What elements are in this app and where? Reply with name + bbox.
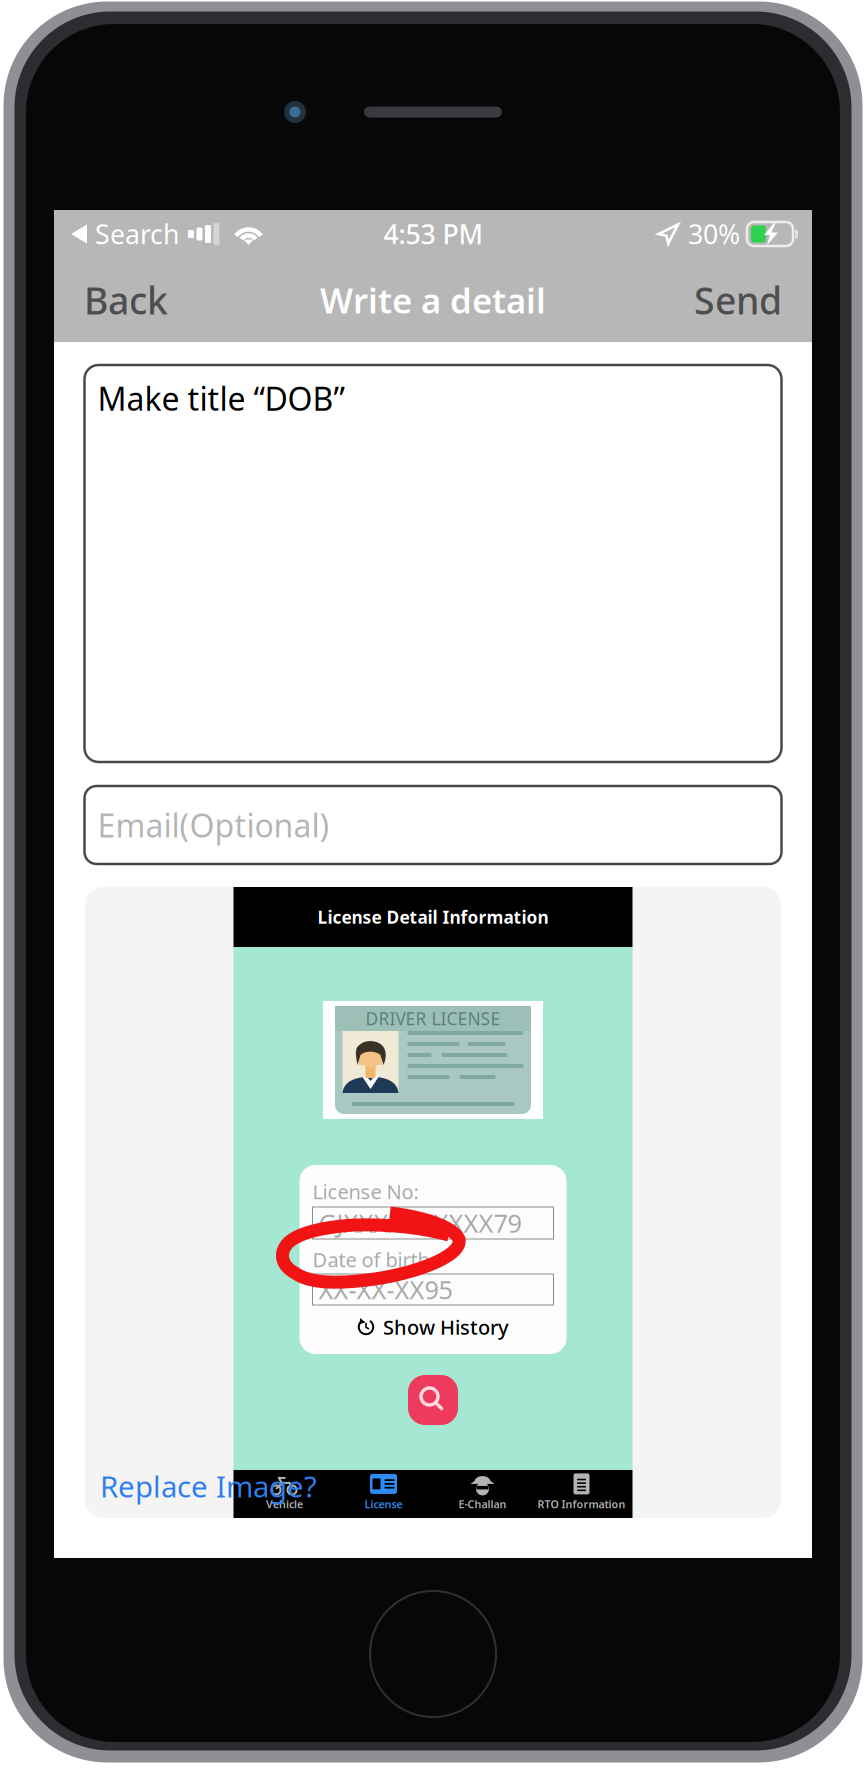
- staticText: Replace Image?: [100, 1466, 317, 1505]
- staticText: Search: [95, 216, 179, 252]
- staticText: 30%: [688, 216, 740, 252]
- button[interactable]: Show History: [357, 1317, 509, 1337]
- button[interactable]: Vehicle: [235, 1470, 334, 1518]
- button[interactable]: RTO Information: [532, 1470, 631, 1518]
- staticText: Write a detail: [320, 277, 546, 323]
- button[interactable]: Send: [680, 258, 796, 342]
- staticText: DRIVER LICENSE: [365, 1007, 500, 1030]
- staticText: License No:: [312, 1178, 418, 1205]
- staticText: Vehicle: [266, 1497, 303, 1511]
- staticText: E-Challan: [458, 1497, 506, 1511]
- staticText: GJXXXXXXXXXX79: [318, 1206, 521, 1240]
- button[interactable]: Search: [408, 1375, 458, 1425]
- staticText: License Detail Information: [317, 905, 548, 928]
- staticText: Email(Optional): [97, 804, 329, 846]
- staticText: Date of birth: [312, 1246, 429, 1273]
- button[interactable]: Replace Image?: [85, 1466, 325, 1506]
- staticText: Show History: [383, 1314, 509, 1340]
- button[interactable]: Back: [70, 258, 182, 342]
- staticText: RTO Information: [537, 1497, 625, 1511]
- button[interactable]: E-Challan: [433, 1470, 532, 1518]
- staticText: 4:53 PM: [383, 216, 482, 252]
- staticText: Make title “DOB”: [97, 377, 344, 419]
- staticText: Back: [84, 275, 168, 325]
- staticText: XX-XX-XX95: [318, 1273, 452, 1306]
- staticText: Send: [694, 275, 782, 325]
- button[interactable]: License: [334, 1470, 433, 1518]
- staticText: License: [364, 1497, 402, 1511]
